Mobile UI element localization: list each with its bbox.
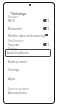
staticText: Sounds: [8, 43, 19, 47]
staticText: System updates: [8, 87, 29, 91]
staticText: Storage: [8, 68, 20, 72]
staticText: Notifications: [8, 39, 24, 43]
staticText: Auto brightness: [7, 51, 29, 55]
button[interactable]: Toggle: [43, 27, 49, 30]
button[interactable]: Toggle: [43, 19, 49, 22]
button[interactable]: Auto brightness: [5, 49, 51, 57]
staticText: Settings: [12, 11, 27, 16]
staticText: Bluetooth: [8, 27, 23, 31]
staticText: Display: [8, 47, 17, 51]
button[interactable]: Back: [9, 11, 12, 14]
staticText: Wi-Fi: [8, 19, 16, 23]
button[interactable]: Toggle: [43, 43, 49, 46]
staticText: About phone: [8, 91, 27, 95]
staticText: Battery saver: [8, 60, 28, 64]
staticText: Apps: [8, 77, 16, 81]
staticText: Mobile data and roaming: [8, 34, 45, 38]
staticText: Account: [8, 15, 18, 19]
button[interactable]: Toggle data: [45, 34, 48, 36]
